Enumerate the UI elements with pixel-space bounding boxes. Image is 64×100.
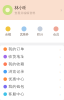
staticText: 余额 (5, 32, 11, 36)
button[interactable]: 优惠券 (16, 26, 32, 36)
staticText: › (60, 46, 61, 52)
button[interactable]: 余额 (0, 26, 16, 36)
button[interactable]: 收货地址 (1, 53, 63, 60)
staticText: 客服中心 (9, 92, 25, 96)
button[interactable]: 我的钱包 (1, 83, 63, 90)
staticText: 优惠中心 (9, 77, 25, 81)
staticText: › (60, 54, 61, 59)
staticText: › (60, 91, 61, 97)
staticText: › (60, 61, 61, 67)
staticText: 我的收藏 (9, 62, 25, 66)
staticText: › (60, 69, 61, 74)
button[interactable]: 我的收藏 (1, 60, 63, 68)
staticText: 会员 (53, 32, 59, 36)
button[interactable]: 会员 (48, 26, 64, 36)
staticText: 积分 (37, 32, 43, 36)
staticText: 收货地址 (9, 54, 25, 59)
button[interactable]: 优惠中心 (1, 75, 63, 83)
staticText: › (60, 76, 61, 82)
button[interactable]: 积分 (32, 26, 48, 36)
staticText: 优惠券 (19, 32, 28, 36)
staticText: 我的订单 (9, 47, 25, 51)
button[interactable]: 浏览记录 (1, 68, 63, 75)
button[interactable]: 我的订单 (1, 45, 63, 53)
staticText: 我的钱包 (9, 84, 25, 89)
button[interactable]: 客服中心 (1, 90, 63, 98)
staticText: 林小明 (14, 5, 26, 11)
staticText: › (60, 84, 61, 89)
staticText: 查看并编辑资料 (14, 11, 35, 15)
staticText: 浏览记录 (9, 69, 25, 74)
staticText: › (60, 7, 61, 13)
